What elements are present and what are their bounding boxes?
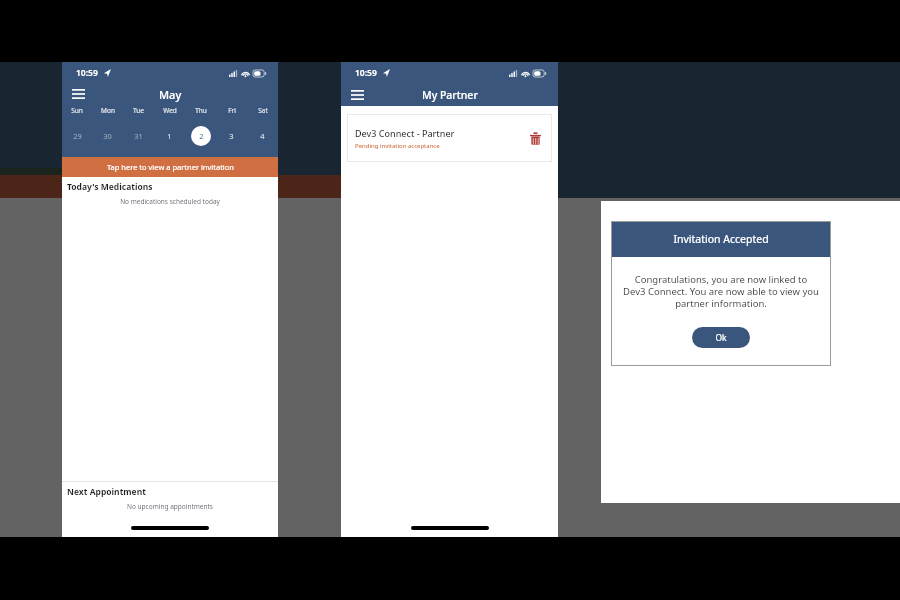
button[interactable]: 30 <box>92 115 123 157</box>
button[interactable]: Dev3 Connect - Partner <box>347 114 552 162</box>
staticText: No medications scheduled today <box>62 197 278 206</box>
button[interactable]: 2 <box>185 115 216 157</box>
button[interactable]: 31 <box>123 115 154 157</box>
staticText: Tue <box>133 106 144 115</box>
staticText: May <box>159 87 182 102</box>
button[interactable]: Delete partner <box>526 129 544 147</box>
staticText: Tap here to view a partner invitation <box>107 162 234 172</box>
staticText: Invitation Accepted <box>673 232 769 246</box>
button[interactable]: 3 <box>216 115 247 157</box>
staticText: 10:59 <box>355 67 377 79</box>
staticText: 1 <box>167 131 172 141</box>
staticText: 29 <box>73 131 82 141</box>
staticText: No upcoming appointments <box>62 502 278 511</box>
staticText: Congratulations, you are now linked to D… <box>623 273 819 310</box>
staticText: Mon <box>101 106 115 115</box>
staticText: Fri <box>228 106 236 115</box>
staticText: 2 <box>199 131 204 141</box>
staticText: Next Appointment <box>67 486 146 498</box>
staticText: Ok <box>715 332 727 344</box>
staticText: Pending invitation acceptance <box>355 142 440 150</box>
staticText: 3 <box>229 131 234 141</box>
staticText: Thu <box>195 106 207 115</box>
staticText: Wed <box>163 106 177 115</box>
staticText: Sun <box>71 106 83 115</box>
button[interactable]: Menu <box>69 86 87 102</box>
staticText: Sat <box>258 106 268 115</box>
button[interactable]: 4 <box>247 115 278 157</box>
button[interactable]: Tap here to view a partner invitation <box>62 157 278 177</box>
button[interactable]: Menu <box>348 87 366 103</box>
staticText: Today's Medications <box>67 181 153 193</box>
staticText: 30 <box>103 131 112 141</box>
staticText: My Partner <box>422 88 478 102</box>
button[interactable]: 29 <box>62 115 92 157</box>
staticText: 10:59 <box>76 67 98 79</box>
button[interactable]: 1 <box>154 115 185 157</box>
button[interactable]: Ok <box>692 327 750 348</box>
staticText: 4 <box>260 131 265 141</box>
staticText: 31 <box>134 131 143 141</box>
staticText: Dev3 Connect - Partner <box>355 127 455 139</box>
